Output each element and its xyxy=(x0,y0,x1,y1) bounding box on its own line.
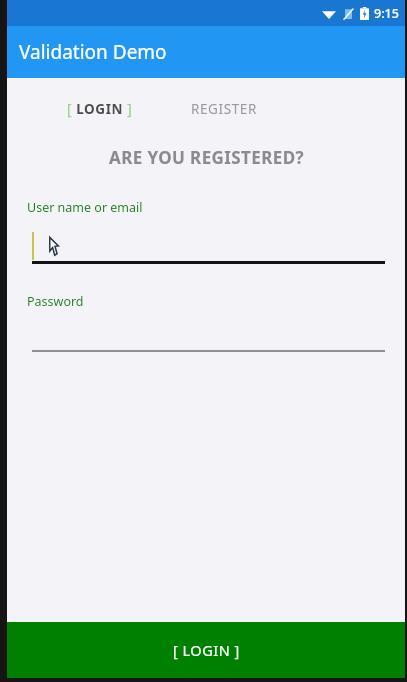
staticText: User name or email xyxy=(27,199,143,216)
staticText: [ LOGIN ] xyxy=(173,640,240,660)
button[interactable]: [ LOGIN ] xyxy=(59,94,141,124)
button[interactable]: Login xyxy=(7,622,405,678)
staticText: ARE YOU REGISTERED? xyxy=(109,146,304,169)
button[interactable]: REGISTER xyxy=(183,94,265,124)
staticText: 9:15 xyxy=(374,5,399,22)
button[interactable]: Password xyxy=(7,293,405,354)
staticText: [ LOGIN ] xyxy=(67,100,133,118)
staticText: Validation Demo xyxy=(19,39,167,65)
button[interactable]: User name or email xyxy=(7,199,405,265)
staticText: REGISTER xyxy=(191,100,257,118)
staticText: Password xyxy=(27,293,84,310)
